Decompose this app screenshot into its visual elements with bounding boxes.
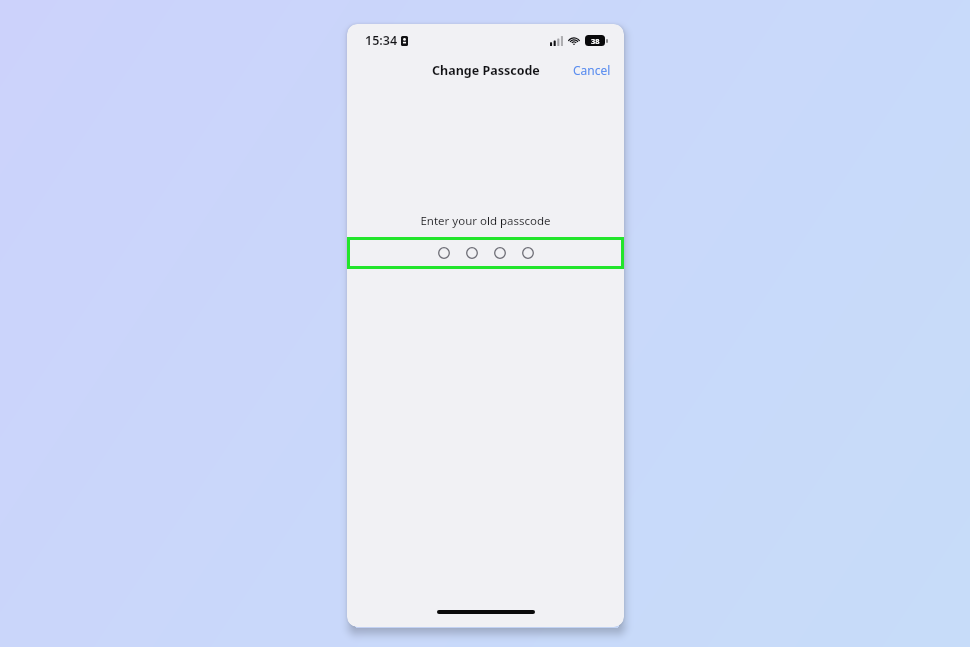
- button[interactable]: Passcode entry field: [347, 237, 624, 269]
- staticText: 15:34: [365, 32, 398, 49]
- button[interactable]: Cancel: [560, 58, 624, 82]
- staticText: Enter your old passcode: [347, 213, 624, 229]
- staticText: Cancel: [573, 62, 611, 78]
- staticText: 38: [591, 36, 600, 46]
- staticText: Change Passcode: [432, 62, 540, 79]
